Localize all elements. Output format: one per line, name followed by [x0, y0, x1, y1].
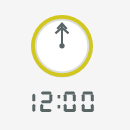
button[interactable]: Timer dial	[31, 15, 93, 77]
button[interactable]	[30, 90, 96, 114]
